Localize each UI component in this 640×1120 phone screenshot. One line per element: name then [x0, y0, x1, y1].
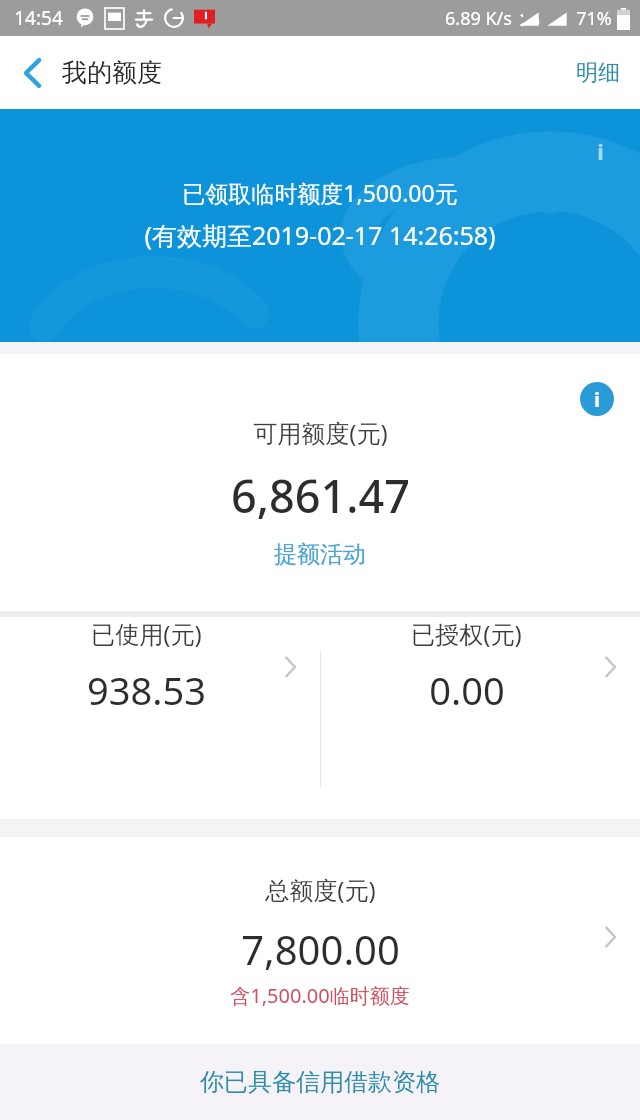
staticText: 14:54 — [14, 5, 63, 31]
button[interactable]: 总额度(元) — [0, 837, 640, 1044]
button[interactable]: 你已具备信用借款资格 — [0, 1044, 640, 1120]
staticText: 明细 — [576, 59, 620, 87]
staticText: i — [594, 386, 600, 413]
button[interactable]: 已授权(元) — [320, 617, 640, 716]
button[interactable]: 明细 — [556, 36, 640, 109]
button[interactable]: 已使用(元) — [0, 617, 320, 716]
button[interactable]: Credit info — [580, 382, 614, 416]
staticText: 提额活动 — [274, 540, 366, 569]
staticText: 可用额度(元) — [253, 416, 388, 449]
staticText: 你已具备信用借款资格 — [200, 1067, 440, 1097]
staticText: 0.00 — [429, 664, 505, 716]
button[interactable]: Info — [584, 135, 616, 167]
staticText: 已使用(元) — [91, 617, 202, 650]
staticText: 6,861.47 — [231, 465, 410, 526]
staticText: 含1,500.00临时额度 — [230, 982, 410, 1009]
staticText: 71% — [576, 6, 612, 31]
staticText: 总额度(元) — [265, 873, 376, 906]
button[interactable]: Back — [0, 36, 66, 109]
staticText: (有效期至2019-02-17 14:26:58) — [144, 218, 496, 252]
staticText: 我的额度 — [62, 57, 162, 88]
staticText: 6.89 K/s — [445, 6, 512, 31]
staticText: 已领取临时额度1,500.00元 — [182, 177, 458, 208]
staticText: 938.53 — [87, 664, 206, 716]
staticText: 7,800.00 — [241, 922, 400, 976]
staticText: 已授权(元) — [411, 617, 522, 650]
button[interactable]: 提额活动 — [264, 538, 376, 571]
staticText: 4G — [528, 14, 540, 26]
staticText: i — [597, 136, 604, 166]
